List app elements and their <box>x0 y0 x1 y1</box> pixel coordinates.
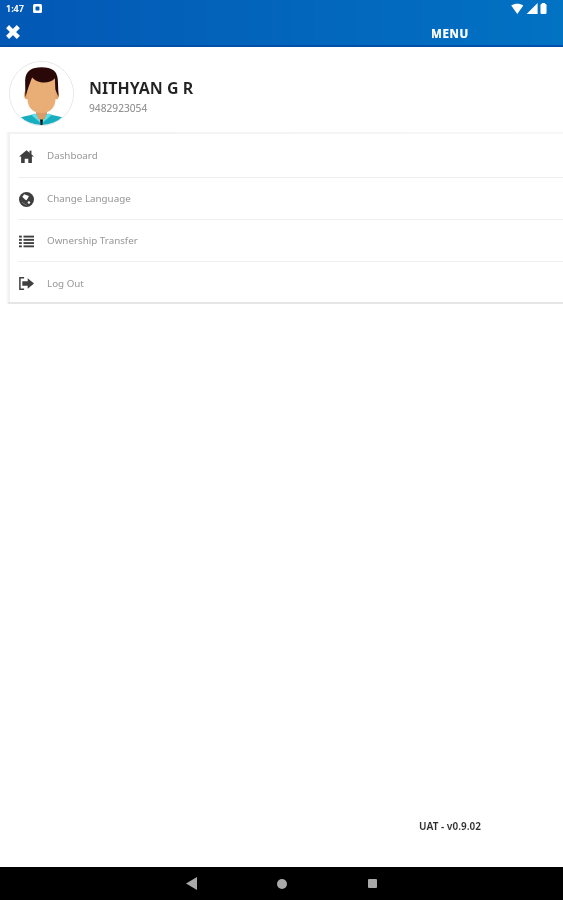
button[interactable]: Home <box>236 867 328 900</box>
button[interactable]: Back <box>145 867 237 900</box>
button[interactable]: Dashboard <box>10 134 563 177</box>
staticText: 1:47 <box>6 2 24 14</box>
staticText: UAT - v0.9.02 <box>419 819 482 833</box>
button[interactable]: Ownership Transfer <box>10 220 563 261</box>
staticText: Ownership Transfer <box>47 234 138 247</box>
button[interactable]: NITHYAN G R <box>0 47 563 132</box>
staticText: NITHYAN G R <box>89 77 194 99</box>
button[interactable]: Log Out <box>10 262 563 304</box>
button[interactable]: Change Language <box>10 178 563 219</box>
button[interactable]: Close <box>0 19 26 45</box>
button[interactable]: Recents <box>326 867 418 900</box>
staticText: Log Out <box>47 277 84 290</box>
staticText: MENU <box>431 26 469 42</box>
staticText: Change Language <box>47 192 131 205</box>
staticText: Dashboard <box>47 149 98 162</box>
staticText: 9482923054 <box>89 101 148 115</box>
